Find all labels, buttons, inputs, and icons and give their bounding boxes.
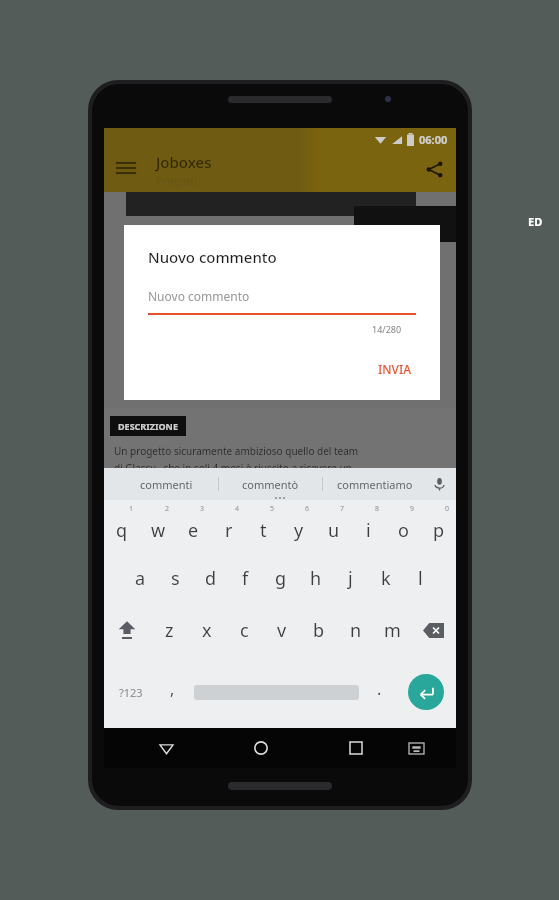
staticText: 5 — [270, 504, 275, 514]
button[interactable]: Hide keyboard — [396, 728, 436, 768]
button[interactable]: n — [337, 604, 374, 656]
staticText: 8 — [375, 504, 380, 514]
staticText: 14/280 — [372, 323, 402, 335]
button[interactable]: 0 — [421, 500, 456, 552]
staticText: 6 — [305, 504, 310, 514]
button[interactable]: Recents — [336, 728, 376, 768]
button[interactable]: 1 — [104, 500, 140, 552]
button[interactable]: s — [158, 552, 193, 604]
button[interactable]: l — [403, 552, 438, 604]
staticText: Nuovo commento — [148, 247, 277, 267]
staticText: 1 — [129, 504, 134, 514]
staticText: c — [240, 618, 249, 643]
button[interactable]: Menu — [104, 146, 148, 190]
button[interactable]: , — [157, 656, 188, 728]
button[interactable]: Home — [241, 728, 281, 768]
staticText: . — [377, 678, 382, 700]
staticText: z — [165, 618, 174, 643]
staticText: u — [328, 518, 340, 543]
button[interactable]: 5 — [246, 500, 281, 552]
staticText: a — [135, 566, 146, 591]
staticText: t — [260, 518, 267, 543]
staticText: o — [398, 518, 409, 543]
staticText: 4 — [235, 504, 240, 514]
button[interactable]: v — [263, 604, 300, 656]
staticText: q — [116, 518, 128, 543]
staticText: x — [202, 618, 212, 643]
button[interactable]: 6 — [281, 500, 316, 552]
staticText: r — [225, 518, 233, 543]
button[interactable]: j — [333, 552, 368, 604]
staticText: di Glassy , che in soli 4 mesi è riuscit… — [114, 461, 352, 475]
staticText: p — [433, 518, 445, 543]
button[interactable]: Back — [147, 728, 186, 768]
staticText: commenti — [140, 477, 193, 492]
staticText: DESCRIZIONE — [118, 420, 178, 432]
staticText: Progetti — [156, 173, 198, 188]
staticText: , — [170, 678, 175, 700]
staticText: b — [313, 618, 325, 643]
staticText: y — [294, 518, 304, 543]
staticText: j — [348, 566, 353, 591]
staticText: 9 — [410, 504, 415, 514]
button[interactable]: x — [188, 604, 226, 656]
button[interactable]: commentò — [219, 468, 322, 500]
staticText: h — [310, 566, 322, 591]
staticText: e — [188, 518, 199, 543]
button[interactable]: g — [263, 552, 298, 604]
staticText: INVIA — [378, 361, 412, 377]
button[interactable]: . — [364, 656, 395, 728]
staticText: 2 — [165, 504, 170, 514]
button[interactable]: 3 — [176, 500, 211, 552]
staticText: w — [151, 518, 166, 543]
staticText: 06:00 — [419, 132, 448, 147]
staticText: commentiamo — [337, 477, 413, 492]
staticText: v — [277, 618, 287, 643]
button[interactable]: 9 — [386, 500, 421, 552]
staticText: 7 — [340, 504, 345, 514]
staticText: Nuovo commento — [148, 288, 250, 304]
button[interactable]: c — [226, 604, 263, 656]
button[interactable]: b — [300, 604, 337, 656]
button[interactable]: Share — [412, 147, 456, 191]
staticText: d — [205, 566, 217, 591]
button[interactable]: m — [374, 604, 411, 656]
staticText: 3 — [200, 504, 205, 514]
staticText: commentò — [242, 477, 299, 492]
button[interactable]: 8 — [351, 500, 386, 552]
button[interactable]: 2 — [140, 500, 176, 552]
staticText: g — [275, 566, 287, 591]
button[interactable]: Space — [188, 656, 364, 728]
button[interactable]: ?123 — [104, 656, 157, 728]
staticText: 0 — [445, 504, 450, 514]
staticText: i — [366, 518, 371, 543]
staticText: Joboxes — [156, 152, 212, 172]
staticText: k — [381, 566, 391, 591]
button[interactable]: 7 — [316, 500, 351, 552]
staticText: s — [171, 566, 180, 591]
button[interactable]: INVIA — [364, 353, 426, 385]
staticText: l — [418, 566, 423, 591]
button[interactable]: Voice input — [426, 468, 452, 500]
button[interactable]: a — [123, 552, 158, 604]
button[interactable]: f — [228, 552, 263, 604]
button[interactable]: Enter — [408, 674, 444, 710]
button[interactable]: k — [368, 552, 403, 604]
staticText: m — [384, 618, 401, 643]
staticText: ?123 — [119, 685, 143, 700]
button[interactable]: commenti — [114, 468, 218, 500]
button[interactable]: Backspace — [411, 604, 456, 656]
button[interactable]: Shift — [104, 604, 150, 656]
button[interactable]: d — [193, 552, 228, 604]
staticText: f — [242, 566, 249, 591]
staticText: ED — [528, 214, 543, 229]
button[interactable]: Nuovo commento — [148, 288, 416, 314]
button[interactable]: z — [150, 604, 188, 656]
staticText: n — [350, 618, 362, 643]
button[interactable]: commentiamo — [323, 468, 426, 500]
button[interactable]: h — [298, 552, 333, 604]
staticText: Un progetto sicuramente ambizioso quello… — [114, 444, 359, 458]
button[interactable]: 4 — [211, 500, 246, 552]
